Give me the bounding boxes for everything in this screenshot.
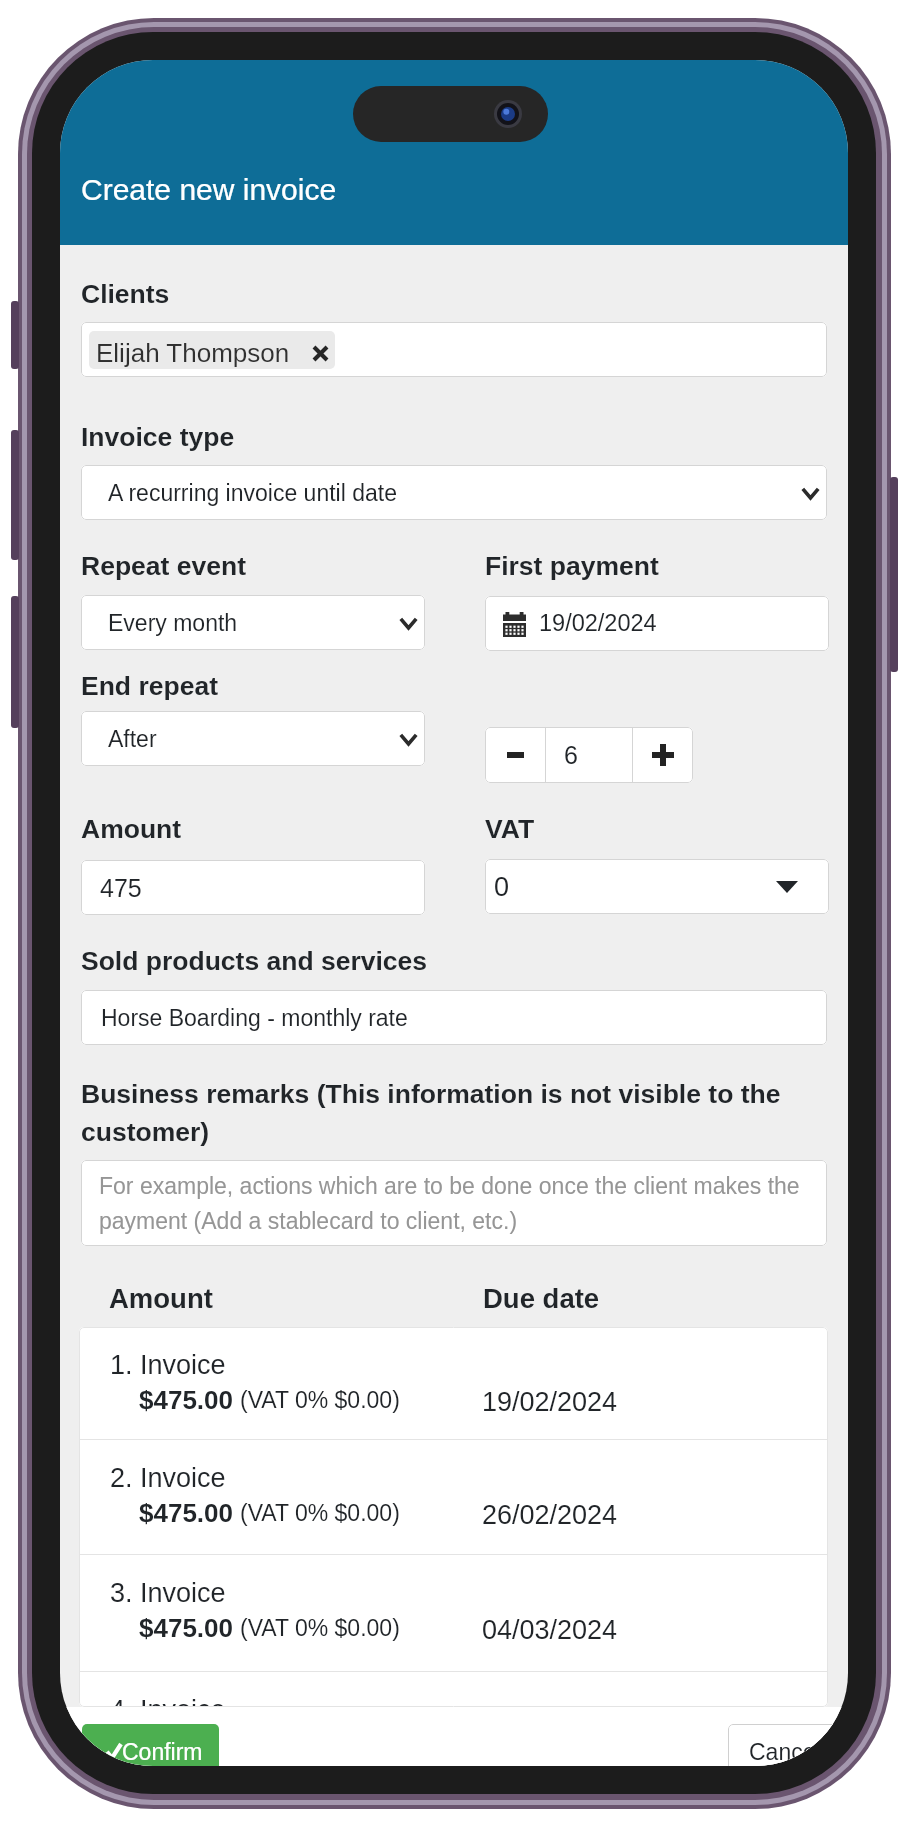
staticText: For example, actions which are to be don…	[99, 1173, 811, 1234]
staticText: Amount	[81, 814, 182, 844]
staticText: 0	[494, 872, 510, 902]
staticText: 2. Invoice	[110, 1463, 226, 1493]
button[interactable]: 3. Invoice	[79, 1555, 828, 1668]
staticText: First payment	[485, 551, 659, 581]
staticText: (VAT 0% $0.00)	[240, 1500, 400, 1526]
button[interactable]: 1. Invoice	[79, 1327, 828, 1440]
button[interactable]: 4. Invoice	[79, 1672, 828, 1707]
button[interactable]: After	[81, 711, 425, 766]
staticText: $475.00	[139, 1613, 233, 1642]
button[interactable]: Decrease count	[485, 727, 545, 783]
staticText: $475.00	[139, 1498, 233, 1527]
staticText: Amount	[109, 1283, 213, 1314]
staticText: 26/02/2024	[482, 1500, 618, 1530]
button[interactable]: 19/02/2024	[485, 596, 829, 651]
staticText: 6	[564, 741, 578, 769]
staticText: End repeat	[81, 671, 218, 701]
button[interactable]: Elijah Thompson	[81, 322, 827, 377]
button[interactable]: 475	[81, 860, 425, 915]
staticText: Repeat event	[81, 551, 246, 581]
staticText: Due date	[483, 1283, 600, 1314]
staticText: VAT	[485, 814, 535, 844]
staticText: 3. Invoice	[110, 1578, 226, 1608]
button[interactable]: Elijah Thompson	[89, 331, 335, 369]
button[interactable]: 2. Invoice	[79, 1440, 828, 1553]
staticText: 4. Invoice	[110, 1695, 226, 1707]
staticText: (VAT 0% $0.00)	[240, 1387, 400, 1413]
staticText: Clients	[81, 279, 170, 309]
staticText: 1. Invoice	[110, 1350, 226, 1380]
button[interactable]: Increase count	[633, 727, 693, 783]
button[interactable]: For example, actions which are to be don…	[81, 1160, 827, 1246]
staticText: Invoice type	[81, 422, 235, 452]
button[interactable]: Every month	[81, 595, 425, 650]
staticText: 04/03/2024	[482, 1615, 618, 1645]
staticText: $475.00	[139, 1385, 233, 1414]
staticText: Horse Boarding - monthly rate	[101, 1005, 408, 1031]
staticText: Sold products and services	[81, 946, 428, 976]
staticText: 475	[100, 874, 142, 902]
staticText: A recurring invoice until date	[108, 480, 397, 506]
staticText: Cancel	[749, 1739, 821, 1765]
staticText: Create new invoice	[81, 173, 337, 207]
button[interactable]: 0	[485, 859, 829, 914]
staticText: Business remarks (This information is no…	[81, 1079, 797, 1147]
staticText: After	[108, 726, 157, 752]
button[interactable]: Cancel	[728, 1724, 848, 1766]
button[interactable]: Horse Boarding - monthly rate	[81, 990, 827, 1045]
staticText: Elijah Thompson	[96, 338, 290, 367]
staticText: Confirm	[122, 1739, 203, 1765]
staticText: (VAT 0% $0.00)	[240, 1615, 400, 1641]
button[interactable]: A recurring invoice until date	[81, 465, 827, 520]
staticText: Every month	[108, 610, 238, 636]
staticText: 19/02/2024	[482, 1387, 618, 1417]
button[interactable]: Confirm	[82, 1724, 219, 1766]
staticText: 19/02/2024	[539, 610, 657, 636]
